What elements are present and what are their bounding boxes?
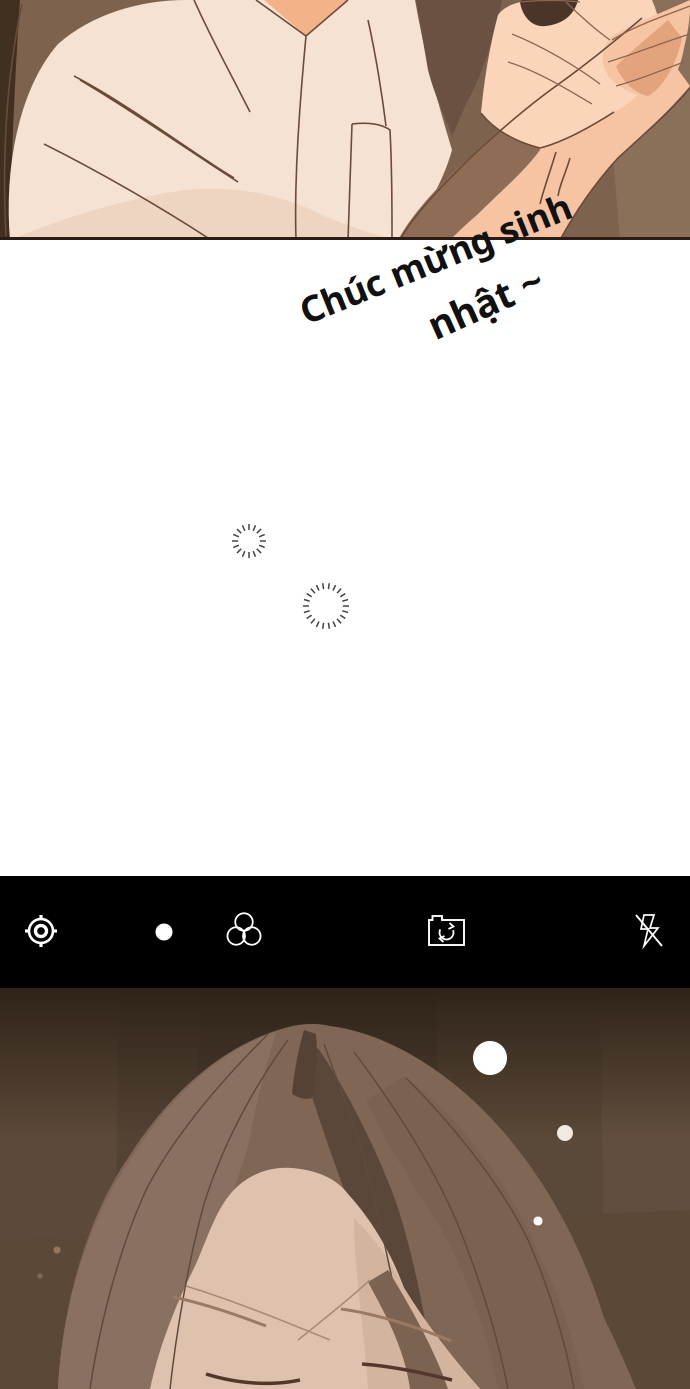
button[interactable]: Flash off xyxy=(613,883,685,979)
staticText: nhật ~ xyxy=(424,276,546,328)
button[interactable]: Switch camera xyxy=(409,883,485,979)
button[interactable]: Focus xyxy=(5,883,77,979)
staticText: Chúc mừng sinh xyxy=(290,234,579,282)
button[interactable]: Exposure xyxy=(132,884,196,980)
button[interactable]: Filters xyxy=(208,881,280,977)
